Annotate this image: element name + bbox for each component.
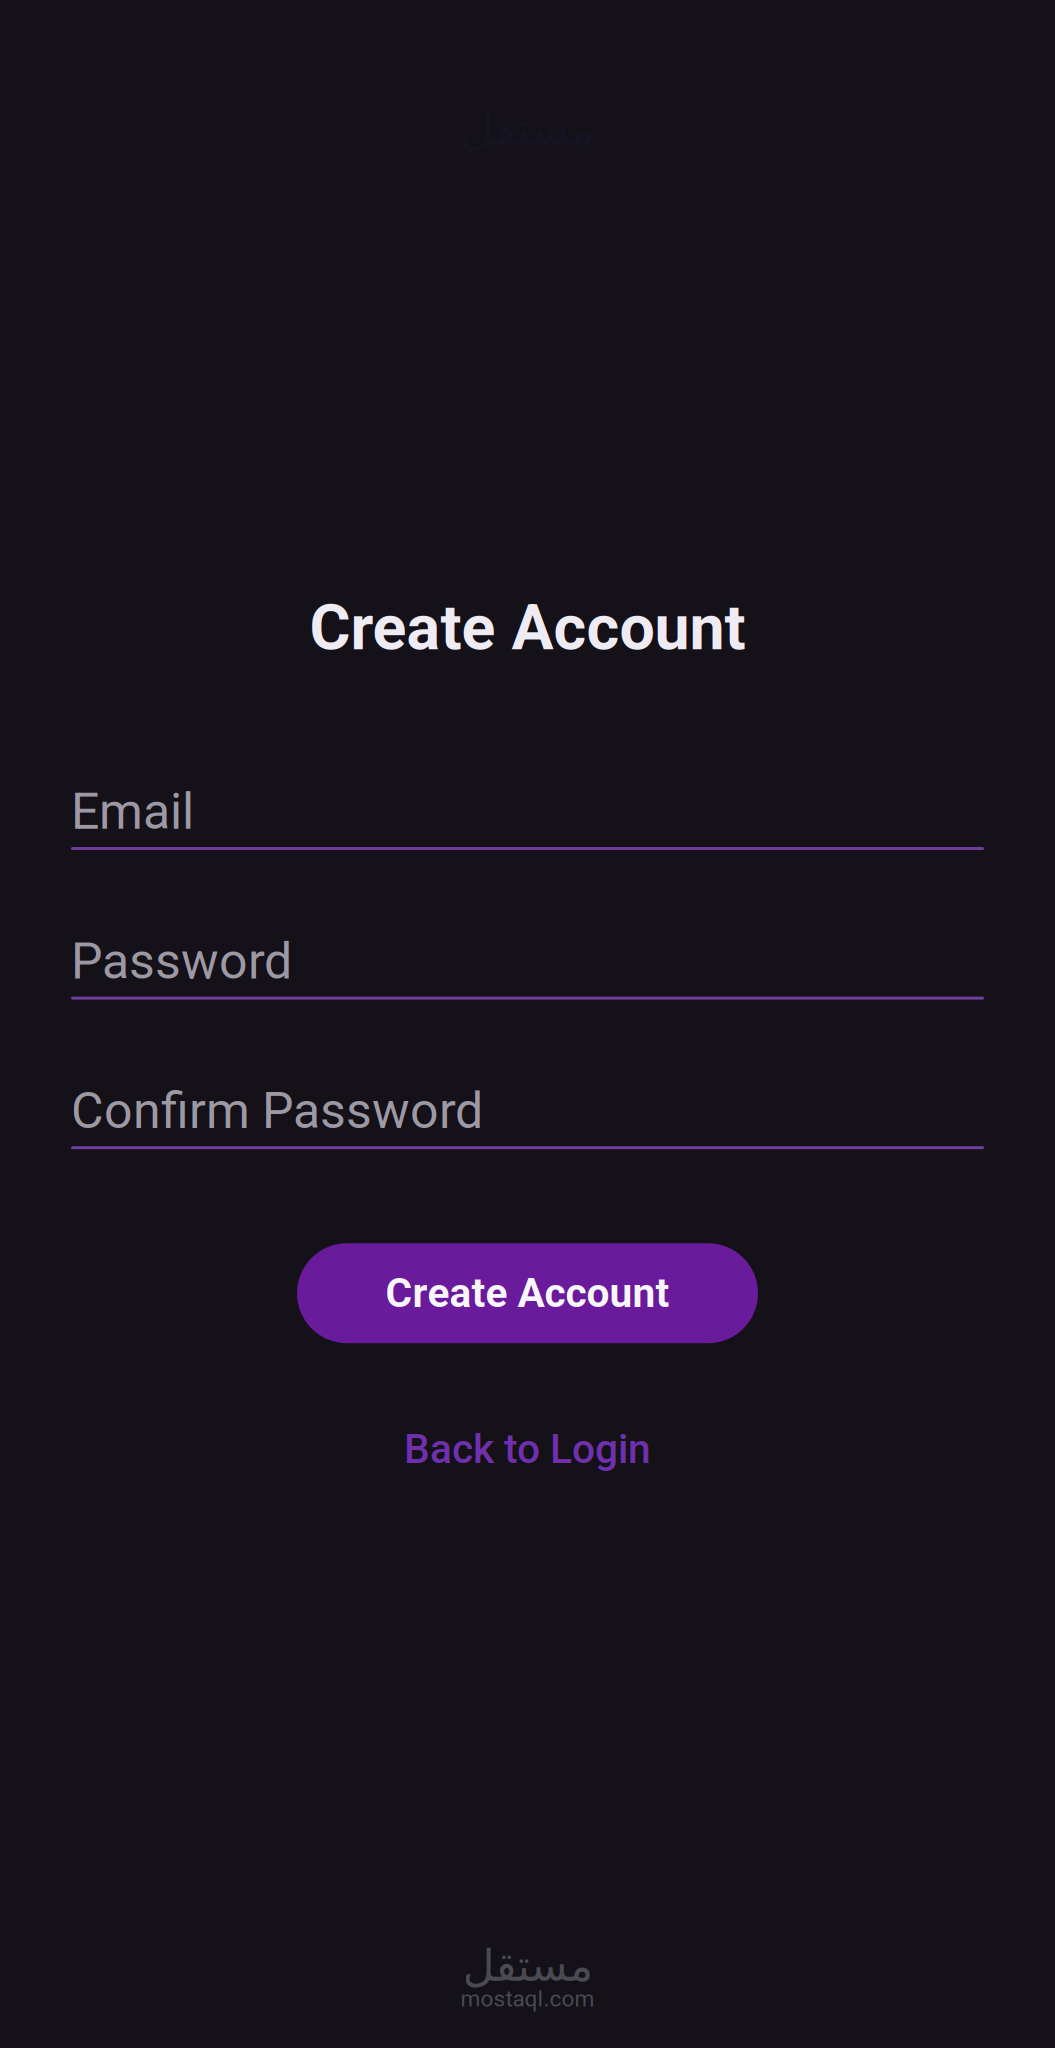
button[interactable]: Confirm Password: [71, 1082, 984, 1149]
button[interactable]: Back to Login: [362, 1419, 692, 1479]
staticText: Back to Login: [404, 1425, 651, 1473]
staticText: مستقل: [462, 1940, 593, 1991]
button[interactable]: Password: [71, 932, 984, 1000]
staticText: Create Account: [385, 1269, 669, 1317]
staticText: Confirm Password: [71, 1082, 483, 1140]
staticText: Password: [71, 932, 292, 991]
staticText: Create Account: [309, 591, 745, 664]
staticText: mostaql.com: [460, 1985, 594, 2012]
button[interactable]: Email: [71, 782, 984, 850]
button[interactable]: Create Account: [297, 1243, 758, 1343]
staticText: Email: [71, 782, 194, 841]
